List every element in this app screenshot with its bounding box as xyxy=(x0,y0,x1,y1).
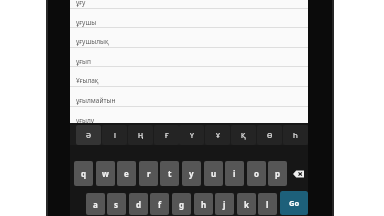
button[interactable]: o xyxy=(247,161,266,186)
button[interactable]: І xyxy=(102,125,127,145)
button[interactable]: y xyxy=(182,161,201,186)
button[interactable]: t xyxy=(160,161,179,186)
staticText: Ә xyxy=(86,131,92,140)
staticText: q xyxy=(81,168,87,179)
button[interactable] xyxy=(293,170,305,178)
button[interactable]: Ң xyxy=(128,125,153,145)
button[interactable]: l xyxy=(258,193,277,215)
staticText: w xyxy=(102,168,109,179)
staticText: s xyxy=(114,199,119,210)
button[interactable]: ұғылмайтын xyxy=(70,86,308,106)
staticText: a xyxy=(93,199,98,210)
staticText: Ң xyxy=(138,131,144,140)
staticText: Ү xyxy=(190,131,194,140)
button[interactable]: Ұғылақ xyxy=(70,66,308,86)
staticText: Ұ xyxy=(216,131,220,140)
button[interactable]: Go xyxy=(280,191,308,215)
button[interactable]: ұғушы xyxy=(70,8,308,28)
button[interactable]: f xyxy=(150,193,169,215)
staticText: ұғушылық xyxy=(76,37,109,46)
staticText: Һ xyxy=(293,131,298,140)
button[interactable]: Ғ xyxy=(154,125,179,145)
button[interactable]: g xyxy=(172,193,191,215)
staticText: j xyxy=(223,199,226,210)
staticText: Ұғылақ xyxy=(76,76,99,85)
staticText: g xyxy=(179,199,185,210)
button[interactable]: p xyxy=(268,161,287,186)
staticText: h xyxy=(201,199,207,210)
button[interactable]: j xyxy=(215,193,234,215)
button[interactable]: r xyxy=(139,161,158,186)
staticText: Қ xyxy=(241,131,246,140)
staticText: d xyxy=(136,199,142,210)
staticText: k xyxy=(244,199,249,210)
button[interactable]: ұғып xyxy=(70,47,308,67)
button[interactable]: s xyxy=(107,193,126,215)
button[interactable]: i xyxy=(225,161,244,186)
button[interactable]: d xyxy=(129,193,148,215)
button[interactable]: q xyxy=(74,161,93,186)
staticText: i xyxy=(233,168,236,179)
staticText: ұғылмайтын xyxy=(76,96,116,105)
button[interactable]: Һ xyxy=(283,125,308,145)
button[interactable]: Ө xyxy=(257,125,282,145)
button[interactable]: h xyxy=(194,193,213,215)
staticText: ұғып xyxy=(76,57,91,66)
button[interactable]: a xyxy=(86,193,105,215)
staticText: Ө xyxy=(267,131,273,140)
button[interactable]: w xyxy=(96,161,115,186)
button[interactable]: e xyxy=(117,161,136,186)
button[interactable]: ұғылу xyxy=(70,106,308,126)
staticText: І xyxy=(114,131,116,140)
staticText: r xyxy=(147,168,151,179)
staticText: ұғу xyxy=(76,0,86,7)
button[interactable]: ұғушылық xyxy=(70,27,308,47)
staticText: u xyxy=(211,168,217,179)
button[interactable]: u xyxy=(204,161,223,186)
staticText: f xyxy=(158,199,162,210)
button[interactable]: ұғу xyxy=(70,0,308,8)
staticText: l xyxy=(266,199,269,210)
button[interactable]: Ә xyxy=(76,125,101,145)
staticText: t xyxy=(168,168,172,179)
staticText: p xyxy=(275,168,281,179)
button[interactable]: Қ xyxy=(231,125,256,145)
staticText: ұғылу xyxy=(76,116,95,125)
button[interactable]: Ү xyxy=(179,125,204,145)
staticText: Ғ xyxy=(165,131,169,140)
staticText: ұғушы xyxy=(76,18,97,27)
button[interactable]: k xyxy=(237,193,256,215)
staticText: Go xyxy=(289,198,300,208)
staticText: y xyxy=(189,168,194,179)
staticText: o xyxy=(254,168,259,179)
staticText: e xyxy=(124,168,129,179)
button[interactable]: Ұ xyxy=(205,125,230,145)
